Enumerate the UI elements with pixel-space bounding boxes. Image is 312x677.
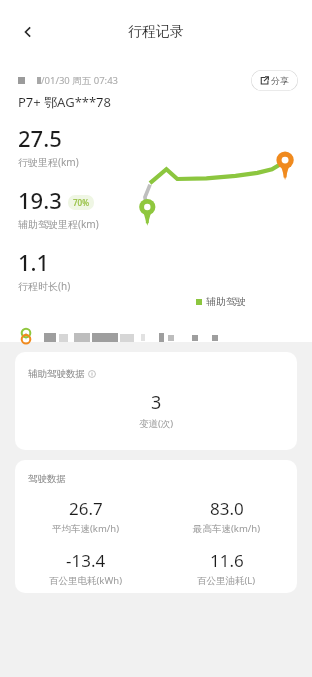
staticText: 行程记录 — [128, 23, 184, 41]
staticText: -13.4 — [66, 549, 106, 572]
staticText: 1.1 — [18, 247, 50, 277]
staticText: 驾驶数据 — [28, 473, 66, 485]
staticText: 平均车速(km/h) — [52, 522, 120, 535]
staticText: 70% — [73, 197, 89, 208]
staticText: 最高车速(km/h) — [193, 522, 261, 535]
staticText: 行驶里程(km) — [18, 155, 79, 169]
staticText: 83.0 — [210, 497, 244, 520]
staticText: /01/30 周五 07:43 — [41, 74, 119, 87]
staticText: 百公里电耗(kWh) — [49, 574, 122, 587]
staticText: 辅助驾驶 — [206, 295, 246, 308]
button[interactable]: 辅助驾驶数据 — [15, 352, 297, 450]
staticText: 辅助驾驶里程(km) — [18, 217, 99, 231]
staticText: 分享 — [271, 75, 289, 86]
button[interactable]: 驾驶数据 — [15, 460, 297, 593]
staticText: P7+ 鄂AG***78 — [18, 93, 111, 111]
staticText: 辅助驾驶数据 — [28, 368, 85, 380]
staticText: 27.5 — [18, 123, 62, 153]
staticText: 变道(次) — [139, 417, 174, 430]
button[interactable] — [0, 324, 312, 342]
button[interactable]: 分享 — [251, 70, 298, 91]
staticText: 11.6 — [210, 549, 244, 572]
staticText: 3 — [151, 390, 162, 415]
button[interactable]: Back — [8, 12, 48, 52]
staticText: 行程时长(h) — [18, 279, 71, 293]
staticText: 百公里油耗(L) — [197, 574, 256, 587]
staticText: 19.3 — [18, 185, 62, 215]
staticText: 26.7 — [69, 497, 103, 520]
